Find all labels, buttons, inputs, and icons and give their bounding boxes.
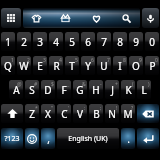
button[interactable]: Y <box>81 56 95 75</box>
button[interactable]: F <box>57 80 71 99</box>
staticText: 8 <box>117 35 123 49</box>
staticText: S <box>29 83 35 97</box>
staticText: " <box>51 105 54 112</box>
staticText: H <box>92 83 100 97</box>
button[interactable]: X <box>41 104 55 123</box>
button[interactable]: 1 <box>1 32 15 51</box>
button[interactable]: D <box>41 80 55 99</box>
staticText: P <box>149 59 156 73</box>
button[interactable]: . <box>121 128 135 149</box>
staticText: 5 <box>75 57 78 64</box>
staticText: - <box>100 81 102 88</box>
staticText: : <box>84 105 86 112</box>
button[interactable]: J <box>105 80 119 99</box>
staticText: English (UK) <box>68 134 108 144</box>
button[interactable]: P <box>145 56 159 75</box>
button[interactable]: Search <box>112 8 140 28</box>
button[interactable]: Emoji <box>25 128 39 149</box>
staticText: Q <box>4 59 12 73</box>
button[interactable]: 5 <box>65 32 79 51</box>
button[interactable]: Voice input <box>142 8 159 28</box>
staticText: 2 <box>27 57 30 64</box>
button[interactable]: C <box>57 104 71 123</box>
staticText: ' <box>68 105 70 112</box>
staticText: ? <box>131 105 134 112</box>
staticText: 0 <box>155 57 158 64</box>
button[interactable]: Backspace <box>137 104 159 123</box>
staticText: 6 <box>85 35 91 49</box>
staticText: C <box>61 107 68 121</box>
staticText: 4 <box>53 35 59 49</box>
staticText: O <box>132 59 140 73</box>
staticText: 9 <box>139 57 142 64</box>
button[interactable]: , <box>41 128 55 149</box>
button[interactable]: A <box>9 80 23 99</box>
button[interactable]: V <box>73 104 87 123</box>
staticText: 7 <box>107 57 110 64</box>
button[interactable]: Shift <box>1 104 23 123</box>
button[interactable]: U <box>97 56 111 75</box>
staticText: ! <box>116 105 118 112</box>
staticText: Z <box>29 107 35 121</box>
button[interactable]: M <box>121 104 135 123</box>
staticText: 3 <box>43 57 46 64</box>
staticText: 5 <box>69 35 75 49</box>
staticText: 3 <box>37 35 43 49</box>
staticText: , <box>47 132 50 146</box>
staticText: Y <box>85 59 91 73</box>
staticText: ( <box>132 81 134 88</box>
staticText: 6 <box>91 57 94 64</box>
staticText: K <box>125 83 132 97</box>
staticText: 8 <box>123 57 126 64</box>
staticText: 0 <box>149 35 155 49</box>
staticText: 9 <box>133 35 139 49</box>
button[interactable]: 0 <box>145 32 159 51</box>
button[interactable]: K <box>121 80 135 99</box>
button[interactable]: 3 <box>33 32 47 51</box>
button[interactable]: Space <box>57 128 119 149</box>
staticText: 4 <box>59 57 62 64</box>
button[interactable]: Q <box>1 56 15 75</box>
button[interactable]: Clipboard <box>49 8 81 28</box>
button[interactable]: 8 <box>113 32 127 51</box>
button[interactable]: T <box>65 56 79 75</box>
button[interactable]: 6 <box>81 32 95 51</box>
button[interactable]: 9 <box>129 32 143 51</box>
staticText: ) <box>148 81 150 88</box>
button[interactable]: Z <box>25 104 39 123</box>
button[interactable]: 4 <box>49 32 63 51</box>
staticText: B <box>93 107 100 121</box>
button[interactable]: R <box>49 56 63 75</box>
staticText: L <box>141 83 147 97</box>
button[interactable]: S <box>25 80 39 99</box>
button[interactable]: E <box>33 56 47 75</box>
button[interactable]: Keyboard layouts <box>1 8 21 28</box>
staticText: A <box>13 83 20 97</box>
button[interactable]: 2 <box>17 32 31 51</box>
button[interactable]: Favourites <box>81 8 112 28</box>
staticText: G <box>76 83 84 97</box>
staticText: X <box>45 107 51 121</box>
button[interactable]: ?123 <box>1 128 23 149</box>
staticText: T <box>69 59 75 73</box>
button[interactable]: W <box>17 56 31 75</box>
button[interactable]: Enter <box>137 128 159 149</box>
button[interactable]: O <box>129 56 143 75</box>
staticText: @ <box>17 81 22 88</box>
staticText: U <box>100 59 108 73</box>
staticText: I <box>118 59 122 73</box>
button[interactable]: G <box>73 80 87 99</box>
staticText: $ <box>51 81 54 88</box>
button[interactable]: B <box>89 104 103 123</box>
button[interactable]: L <box>137 80 151 99</box>
staticText: R <box>53 59 60 73</box>
button[interactable]: N <box>105 104 119 123</box>
staticText: 7 <box>101 35 107 49</box>
staticText: * <box>35 105 38 112</box>
staticText: F <box>61 83 67 97</box>
button[interactable]: H <box>89 80 103 99</box>
button[interactable]: 7 <box>97 32 111 51</box>
staticText: J <box>111 83 114 97</box>
button[interactable]: Stickers <box>23 8 49 28</box>
button[interactable]: I <box>113 56 127 75</box>
